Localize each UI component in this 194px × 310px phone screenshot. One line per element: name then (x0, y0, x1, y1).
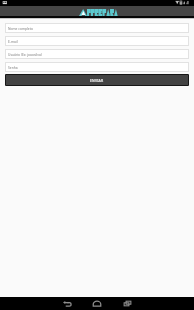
button[interactable]: ENVIAR (5, 74, 189, 86)
button[interactable]: E-mail (5, 36, 189, 46)
staticText: ENVIAR (90, 78, 104, 83)
button[interactable]: Recents (122, 297, 132, 310)
staticText: Nome completo (8, 26, 33, 30)
staticText: E-mail (8, 39, 18, 43)
button[interactable]: Nome completo (5, 23, 189, 33)
staticText: Senha (8, 65, 18, 69)
button[interactable]: Usuário (Ex: joaosilva) (5, 49, 189, 59)
button[interactable]: Senha (5, 62, 189, 72)
button[interactable]: Home (92, 297, 102, 310)
button[interactable]: Back (62, 297, 72, 310)
staticText: Usuário (Ex: joaosilva) (8, 52, 42, 56)
